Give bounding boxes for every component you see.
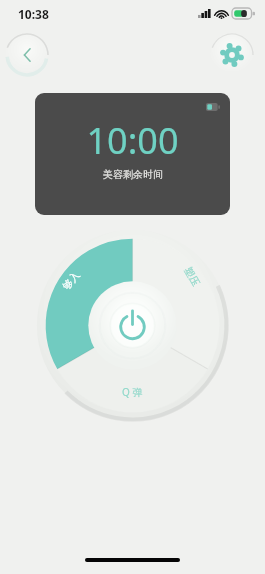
button[interactable]: Q 弹 <box>122 385 143 399</box>
staticText: 10:00 <box>86 116 179 165</box>
button[interactable]: 够入 <box>60 269 82 292</box>
staticText: 美容剩余时间 <box>103 168 163 181</box>
staticText: 10:38 <box>18 6 49 22</box>
staticText: 够入 <box>60 269 82 292</box>
button[interactable]: 10:00 <box>35 93 230 215</box>
button[interactable]: Back <box>3 31 51 79</box>
staticText: 塑压 <box>181 265 203 288</box>
button[interactable]: Settings <box>208 31 256 79</box>
button[interactable] <box>36 229 229 422</box>
staticText: Q 弹 <box>122 385 143 399</box>
button[interactable]: 塑压 <box>181 265 203 288</box>
